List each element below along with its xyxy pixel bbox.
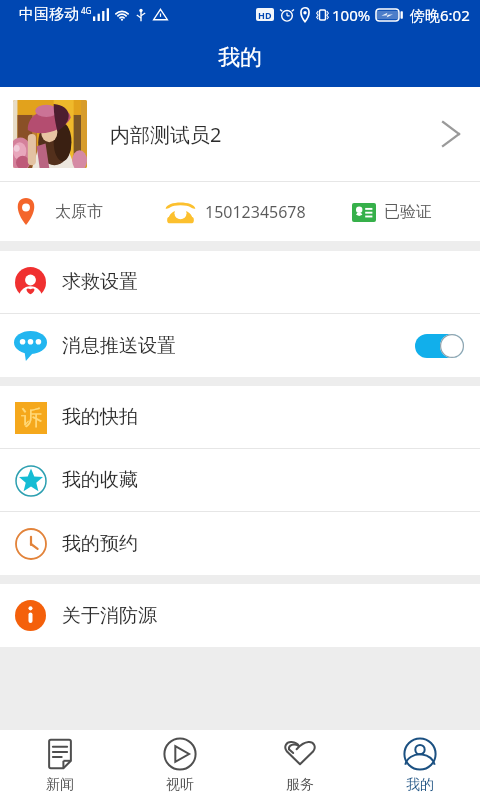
staticText: 新闻 (46, 776, 74, 794)
button[interactable]: 新闻 (0, 730, 120, 800)
button[interactable]: 我的收藏 (0, 449, 480, 511)
staticText: 视听 (166, 776, 194, 794)
button[interactable]: 内部测试员2 (0, 87, 480, 181)
staticText: 服务 (286, 776, 314, 794)
button[interactable]: 我的预约 (0, 512, 480, 575)
button[interactable]: 求救设置 (0, 251, 480, 313)
staticText: 15012345678 (205, 201, 306, 223)
button[interactable]: 视听 (120, 730, 240, 800)
staticText: 傍晚6:02 (410, 5, 470, 25)
staticText: 我的 (218, 44, 262, 72)
button[interactable]: 诉 (0, 386, 480, 448)
button[interactable]: 服务 (240, 730, 360, 800)
staticText: 消息推送设置 (62, 334, 176, 358)
staticText: 我的收藏 (62, 468, 138, 492)
staticText: 内部测试员2 (110, 121, 222, 148)
staticText: 诉 (21, 405, 42, 431)
staticText: 关于消防源 (62, 604, 157, 628)
button[interactable]: 我的 (360, 730, 480, 800)
staticText: 我的预约 (62, 532, 138, 556)
button[interactable]: 消息推送开关 (415, 334, 464, 358)
button[interactable]: 关于消防源 (0, 584, 480, 647)
staticText: 已验证 (384, 202, 432, 222)
staticText: HD (258, 9, 272, 21)
staticText: 4G (81, 5, 92, 16)
staticText: 求救设置 (62, 270, 138, 294)
staticText: 我的快拍 (62, 405, 138, 429)
staticText: 我的 (406, 776, 434, 794)
staticText: 100% (332, 5, 371, 25)
staticText: 中国移动 (19, 5, 79, 24)
staticText: 太原市 (55, 202, 103, 222)
button[interactable]: 消息推送设置 (0, 314, 480, 377)
